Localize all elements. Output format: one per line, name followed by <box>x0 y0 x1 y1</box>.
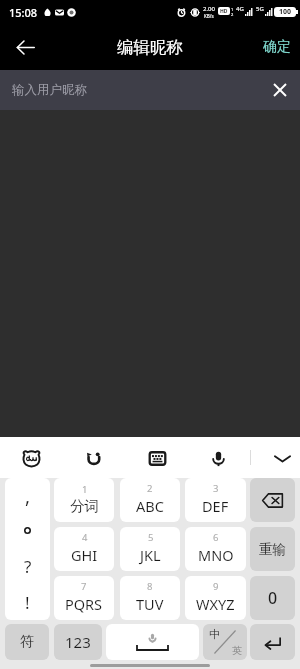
button[interactable]: 确定 <box>251 24 300 70</box>
staticText: 7 <box>81 580 87 593</box>
staticText: DEF <box>202 496 229 516</box>
button[interactable]: Retype <box>250 527 295 571</box>
staticText: 确定 <box>263 38 291 56</box>
staticText: 1 <box>82 483 88 496</box>
staticText: ! <box>25 591 30 614</box>
staticText: 2 <box>231 12 234 17</box>
staticText: 123 <box>65 632 91 652</box>
staticText: 2 <box>147 482 153 495</box>
staticText: 0 <box>268 587 278 609</box>
button[interactable]: 7 <box>54 576 114 620</box>
staticText: PQRS <box>65 594 103 614</box>
staticText: 9 <box>213 580 219 593</box>
staticText: 输入用户昵称 <box>12 82 87 98</box>
staticText: 6 <box>213 531 219 544</box>
staticText: WXYZ <box>196 594 235 614</box>
button[interactable]: Space <box>106 624 199 660</box>
staticText: , <box>25 483 31 509</box>
button[interactable]: Clear text <box>265 75 295 105</box>
staticText: TUV <box>136 594 164 614</box>
button[interactable]: 123 <box>54 624 102 660</box>
staticText: 2.00 <box>203 5 215 13</box>
button[interactable]: Baidu input <box>12 439 50 477</box>
button[interactable]: Keyboard layout <box>138 439 176 477</box>
button[interactable]: 4 <box>54 527 114 571</box>
staticText: 15:08 <box>9 5 38 20</box>
button[interactable]: 3 <box>185 478 246 522</box>
button[interactable]: 0 <box>250 576 295 620</box>
button[interactable]: 8 <box>120 576 180 620</box>
button[interactable]: Emoji <box>74 439 112 477</box>
staticText: JKL <box>140 545 161 565</box>
button[interactable]: Symbols <box>5 624 49 660</box>
staticText: HD <box>220 8 228 15</box>
button[interactable]: Chinese English toggle <box>203 624 247 660</box>
staticText: 编辑昵称 <box>117 37 183 58</box>
button[interactable]: 6 <box>185 527 246 571</box>
button[interactable]: Hide keyboard <box>263 439 300 477</box>
button[interactable]: Punctuation <box>5 478 50 620</box>
button[interactable]: Voice input <box>199 439 237 477</box>
button[interactable]: Enter <box>250 624 295 660</box>
staticText: 英 <box>232 644 242 657</box>
staticText: 5G <box>256 5 264 13</box>
staticText: 重输 <box>259 541 286 558</box>
staticText: GHI <box>71 545 98 565</box>
staticText: 3 <box>213 482 219 495</box>
staticText: KB/s <box>204 13 214 19</box>
staticText: 符 <box>20 633 34 651</box>
staticText: MNO <box>198 545 234 565</box>
button[interactable]: Backspace <box>250 478 295 522</box>
button[interactable]: Back <box>5 27 45 67</box>
staticText: 8 <box>147 580 153 593</box>
button[interactable]: 2 <box>120 478 180 522</box>
staticText: 5 <box>148 531 154 544</box>
staticText: 1 <box>231 7 234 12</box>
staticText: 分词 <box>70 497 99 515</box>
staticText: 4G <box>236 5 244 13</box>
button[interactable]: 9 <box>185 576 246 620</box>
button[interactable]: 1 <box>54 478 114 522</box>
staticText: ? <box>24 555 32 578</box>
staticText: 100 <box>279 7 292 17</box>
staticText: ABC <box>136 496 164 516</box>
button[interactable]: 5 <box>120 527 180 571</box>
staticText: 中 <box>209 627 220 641</box>
staticText: 4 <box>82 531 88 544</box>
